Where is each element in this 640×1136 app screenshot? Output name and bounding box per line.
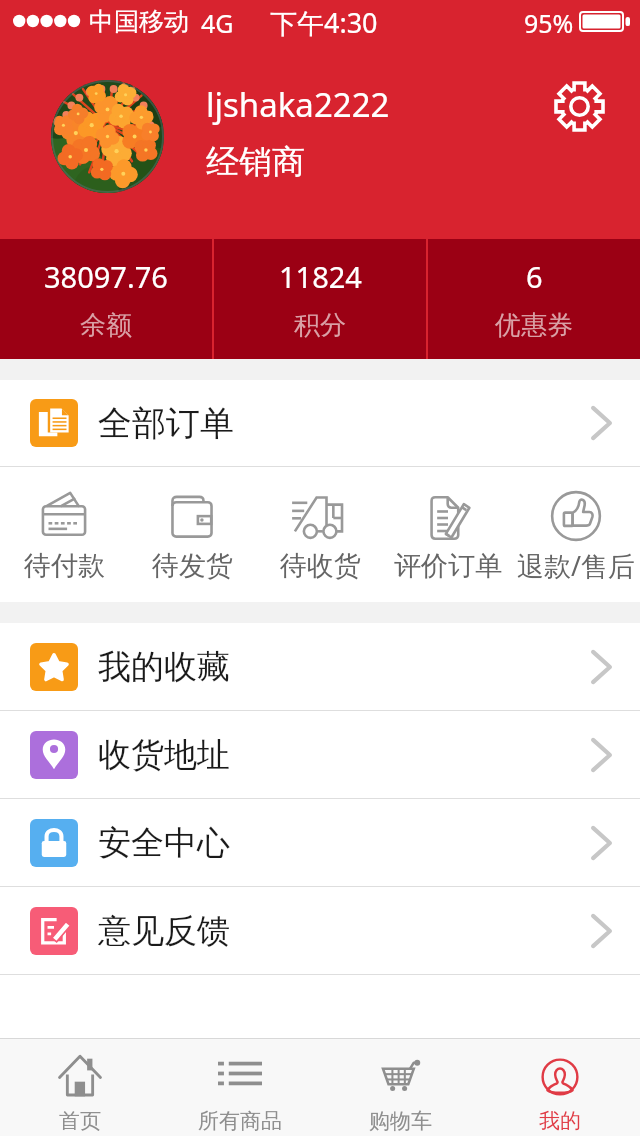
button[interactable]: 待收货: [256, 467, 384, 602]
button[interactable]: 我的: [480, 1039, 640, 1136]
button[interactable]: 收货地址: [0, 711, 640, 798]
button[interactable]: 退款/售后: [512, 467, 640, 602]
staticText: 购物车: [369, 1108, 432, 1134]
staticText: 中国移动: [89, 6, 189, 37]
staticText: 95%: [524, 6, 574, 40]
staticText: 38097.76: [44, 257, 168, 296]
staticText: 所有商品: [198, 1108, 282, 1134]
button[interactable]: 全部订单: [0, 380, 640, 466]
button[interactable]: 待发货: [128, 467, 256, 602]
staticText: 首页: [59, 1108, 101, 1134]
button[interactable]: 所有商品: [160, 1039, 320, 1136]
staticText: ljshaka2222: [206, 82, 390, 127]
staticText: 退款/售后: [517, 547, 636, 584]
button[interactable]: 38097.76: [0, 239, 212, 359]
staticText: 待付款: [24, 549, 105, 583]
staticText: 全部订单: [98, 402, 234, 445]
staticText: 待收货: [280, 549, 361, 583]
staticText: 6: [526, 257, 543, 296]
staticText: 待发货: [152, 549, 233, 583]
button[interactable]: Settings: [546, 73, 612, 139]
button[interactable]: 待付款: [0, 467, 128, 602]
button[interactable]: 购物车: [320, 1039, 480, 1136]
staticText: 下午4:30: [270, 4, 378, 41]
button[interactable]: 安全中心: [0, 799, 640, 886]
staticText: 积分: [294, 309, 346, 342]
staticText: 我的收藏: [98, 646, 230, 688]
staticText: 余额: [80, 309, 132, 342]
button[interactable]: 我的收藏: [0, 623, 640, 710]
staticText: 4G: [201, 6, 234, 40]
button[interactable]: 6: [428, 239, 640, 359]
staticText: 意见反馈: [98, 910, 230, 952]
staticText: 我的: [539, 1108, 581, 1134]
button[interactable]: 首页: [0, 1039, 160, 1136]
button[interactable]: 意见反馈: [0, 887, 640, 974]
staticText: 经销商: [206, 141, 305, 183]
button[interactable]: 评价订单: [384, 467, 512, 602]
button[interactable]: 11824: [214, 239, 426, 359]
staticText: 安全中心: [98, 822, 230, 864]
staticText: 收货地址: [98, 734, 230, 776]
staticText: 优惠券: [495, 309, 573, 342]
staticText: 11824: [279, 257, 362, 296]
staticText: 评价订单: [394, 549, 502, 583]
